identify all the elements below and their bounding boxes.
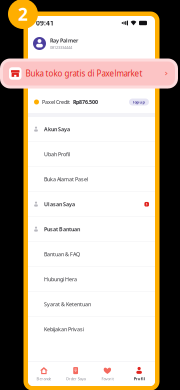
button[interactable]: Paxel Credit bbox=[28, 91, 155, 113]
button[interactable]: Buka Alamat Pasel bbox=[28, 167, 155, 191]
button[interactable]: Akun Saya bbox=[28, 117, 155, 141]
button[interactable]: Ubah Profil bbox=[28, 142, 155, 166]
button[interactable]: Buka toko gratis di Paxelmarket bbox=[0, 58, 178, 88]
staticText: Buka toko gratis di Paxelmarket bbox=[25, 68, 142, 79]
button[interactable]: Kebijakan Privasi bbox=[28, 317, 155, 341]
staticText: 09:41 bbox=[36, 19, 54, 27]
button[interactable]: Bantuan & FAQ bbox=[28, 242, 155, 266]
button[interactable]: Profil bbox=[123, 362, 155, 386]
staticText: Syarat & Ketentuan bbox=[44, 301, 91, 308]
button[interactable]: Order Saya bbox=[60, 362, 92, 386]
staticText: Topup bbox=[132, 99, 145, 105]
staticText: Ubah Profil bbox=[44, 151, 70, 158]
staticText: Pusat Bantuan bbox=[44, 226, 80, 233]
button[interactable]: Beranda bbox=[28, 362, 60, 386]
staticText: Beranda bbox=[36, 376, 51, 381]
staticText: Hubungi Hera bbox=[44, 276, 77, 283]
staticText: Ulasan Saya bbox=[44, 201, 75, 208]
staticText: Paxel Credit bbox=[42, 98, 70, 106]
staticText: Order Saya bbox=[66, 376, 86, 381]
button[interactable]: Favorit bbox=[91, 362, 123, 386]
staticText: 08123334444 bbox=[50, 45, 72, 50]
staticText: Buka Alamat Pasel bbox=[44, 176, 88, 183]
staticText: Profil bbox=[134, 376, 145, 381]
button[interactable]: Ray Palmer bbox=[28, 30, 155, 57]
button[interactable]: Ulasan Saya bbox=[28, 192, 155, 216]
button[interactable]: Pusat Bantuan bbox=[28, 217, 155, 241]
staticText: Bantuan & FAQ bbox=[44, 251, 80, 258]
button[interactable]: Hubungi Hera bbox=[28, 267, 155, 291]
staticText: Favorit bbox=[101, 376, 113, 381]
button[interactable]: Syarat & Ketentuan bbox=[28, 292, 155, 316]
staticText: 5 bbox=[146, 202, 148, 206]
staticText: Rp876.500 bbox=[73, 98, 98, 106]
staticText: Ray Palmer bbox=[50, 37, 78, 44]
staticText: Akun Saya bbox=[44, 126, 70, 133]
staticText: 2 bbox=[18, 2, 28, 25]
staticText: Kebijakan Privasi bbox=[44, 326, 84, 333]
